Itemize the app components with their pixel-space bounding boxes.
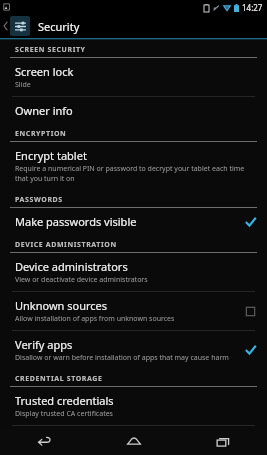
staticText: Device administrators [15,259,128,274]
button[interactable]: Back [0,14,267,38]
button[interactable]: Trusted credentials [0,387,267,425]
button[interactable]: Checked [243,215,257,229]
button[interactable]: Device administrators [0,253,267,291]
staticText: SCREEN SECURITY [15,45,86,55]
staticText: Make passwords visible [15,214,137,229]
staticText: Owner info [15,103,73,118]
button[interactable]: Home [89,428,178,455]
staticText: Slide [15,80,31,90]
other: Back [2,21,9,31]
button[interactable]: Checked [243,343,257,357]
staticText: Display trusted CA certificates [15,409,113,419]
button[interactable]: Screen lock [0,58,267,96]
button[interactable]: Owner info [0,97,267,124]
button[interactable]: Encrypt tablet [0,142,267,190]
staticText: DEVICE ADMINISTRATION [15,240,117,250]
staticText: PASSWORDS [15,195,63,205]
button[interactable]: Make passwords visible [0,208,267,235]
staticText: Trusted credentials [15,393,114,408]
button[interactable]: Unknown sources [0,292,267,330]
staticText: Security [38,19,80,34]
staticText: Require a numerical PIN or password to d… [15,164,257,184]
button[interactable]: Verify apps [0,331,267,369]
staticText: CREDENTIAL STORAGE [15,374,103,384]
button[interactable]: Back [0,428,89,455]
staticText: Disallow or warn before installation of … [15,353,229,363]
staticText: Screen lock [15,64,74,79]
staticText: Allow installation of apps from unknown … [15,314,175,324]
staticText: Encrypt tablet [15,148,87,163]
staticText: View or deactivate device administrators [15,275,148,285]
staticText: Verify apps [15,337,73,352]
staticText: ENCRYPTION [15,129,67,139]
button[interactable]: Recents [178,428,267,455]
staticText: 14:27 [242,2,263,13]
button[interactable]: Unchecked [243,304,257,318]
staticText: Unknown sources [15,298,108,313]
button[interactable]: Settings [10,16,30,36]
